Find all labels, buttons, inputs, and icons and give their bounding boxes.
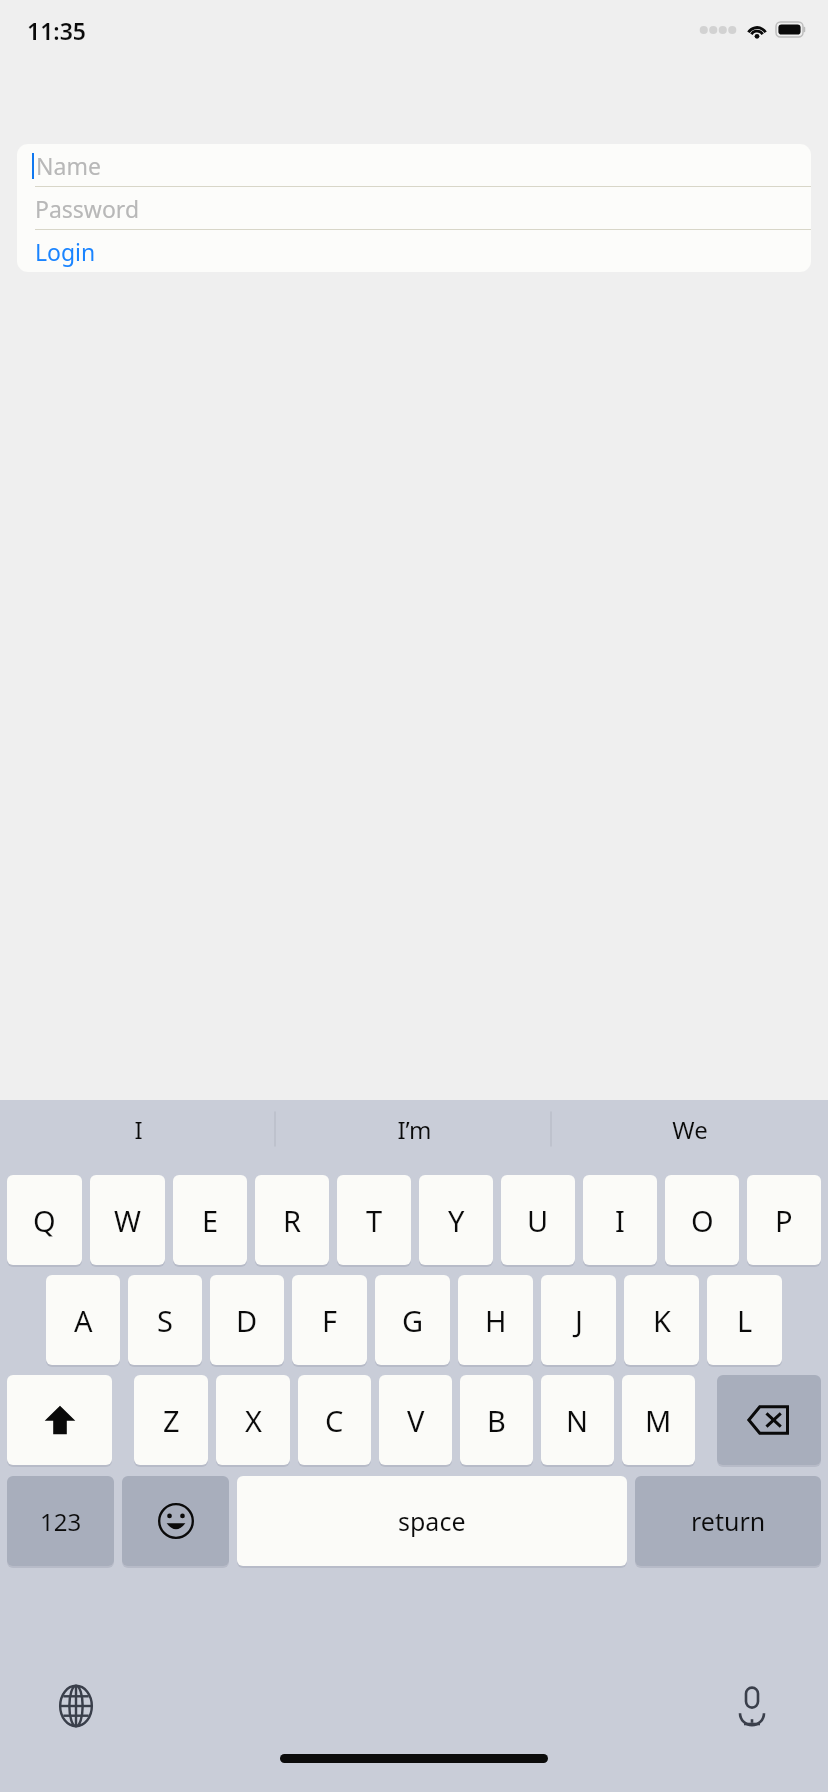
- button[interactable]: R: [255, 1175, 329, 1265]
- button[interactable]: T: [337, 1175, 411, 1265]
- staticText: S: [157, 1301, 173, 1340]
- staticText: G: [402, 1301, 424, 1340]
- button[interactable]: O: [665, 1175, 739, 1265]
- staticText: J: [575, 1301, 583, 1340]
- staticText: A: [74, 1301, 93, 1340]
- staticText: P: [775, 1201, 793, 1240]
- button[interactable]: Q: [7, 1175, 82, 1265]
- button[interactable]: H: [458, 1275, 533, 1365]
- staticText: D: [236, 1301, 258, 1340]
- staticText: Z: [163, 1401, 180, 1440]
- button[interactable]: space: [237, 1476, 627, 1566]
- button[interactable]: B: [460, 1375, 533, 1465]
- staticText: Y: [448, 1201, 465, 1240]
- button[interactable]: X: [216, 1375, 290, 1465]
- button[interactable]: I: [583, 1175, 657, 1265]
- staticText: Password: [35, 193, 140, 224]
- staticText: 11:35: [27, 15, 86, 46]
- staticText: Q: [33, 1201, 56, 1240]
- button[interactable]: Name: [17, 144, 811, 186]
- button[interactable]: Login: [17, 230, 811, 272]
- button[interactable]: Change keyboard: [48, 1678, 104, 1734]
- staticText: 123: [40, 1505, 82, 1538]
- button[interactable]: U: [501, 1175, 575, 1265]
- staticText: X: [245, 1401, 262, 1440]
- button[interactable]: Emoji: [122, 1476, 229, 1566]
- button[interactable]: 123: [7, 1476, 114, 1566]
- button[interactable]: P: [747, 1175, 821, 1265]
- staticText: N: [566, 1401, 589, 1440]
- staticText: I’m: [397, 1113, 432, 1146]
- staticText: Login: [35, 236, 96, 267]
- staticText: We: [672, 1113, 708, 1146]
- staticText: F: [322, 1301, 338, 1340]
- staticText: L: [737, 1301, 753, 1340]
- staticText: H: [485, 1301, 507, 1340]
- staticText: K: [653, 1301, 671, 1340]
- button[interactable]: return: [635, 1476, 821, 1566]
- button[interactable]: A: [46, 1275, 120, 1365]
- staticText: C: [325, 1401, 344, 1440]
- button[interactable]: I: [0, 1100, 276, 1158]
- button[interactable]: Password: [17, 187, 811, 229]
- staticText: Name: [36, 150, 101, 181]
- button[interactable]: D: [210, 1275, 284, 1365]
- button[interactable]: N: [541, 1375, 614, 1465]
- staticText: T: [366, 1201, 383, 1240]
- button[interactable]: Dictation: [724, 1678, 780, 1734]
- button[interactable]: I’m: [276, 1100, 552, 1158]
- staticText: R: [283, 1201, 302, 1240]
- staticText: return: [691, 1504, 766, 1538]
- button[interactable]: C: [298, 1375, 371, 1465]
- staticText: I: [615, 1201, 625, 1240]
- button[interactable]: F: [292, 1275, 367, 1365]
- button[interactable]: M: [622, 1375, 695, 1465]
- button[interactable]: L: [707, 1275, 782, 1365]
- staticText: O: [691, 1201, 714, 1240]
- button[interactable]: Z: [134, 1375, 208, 1465]
- button[interactable]: V: [379, 1375, 452, 1465]
- staticText: E: [202, 1201, 219, 1240]
- staticText: space: [398, 1504, 466, 1538]
- button[interactable]: Shift: [7, 1375, 112, 1465]
- staticText: B: [487, 1401, 506, 1440]
- staticText: U: [527, 1201, 549, 1240]
- staticText: I: [134, 1113, 143, 1146]
- staticText: W: [114, 1201, 141, 1240]
- staticText: M: [645, 1401, 672, 1440]
- button[interactable]: S: [128, 1275, 202, 1365]
- button[interactable]: G: [375, 1275, 450, 1365]
- staticText: V: [407, 1401, 425, 1440]
- button[interactable]: Y: [419, 1175, 493, 1265]
- button[interactable]: E: [173, 1175, 247, 1265]
- button[interactable]: W: [90, 1175, 165, 1265]
- button[interactable]: We: [552, 1100, 828, 1158]
- button[interactable]: Backspace: [717, 1375, 821, 1465]
- button[interactable]: K: [624, 1275, 699, 1365]
- button[interactable]: J: [541, 1275, 616, 1365]
